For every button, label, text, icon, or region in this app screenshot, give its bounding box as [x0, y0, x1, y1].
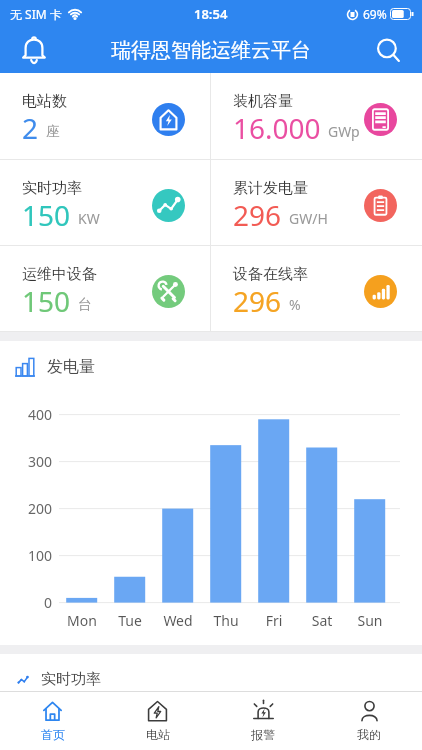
staticText: Mon: [58, 611, 106, 630]
staticText: 设备在线率: [233, 265, 308, 284]
staticText: 150: [22, 196, 71, 234]
staticText: 实时功率: [41, 670, 101, 689]
staticText: 16.000: [233, 109, 321, 147]
staticText: 296: [233, 196, 282, 234]
staticText: 200: [10, 499, 52, 518]
button[interactable]: 运维中设备: [0, 246, 210, 331]
staticText: 0: [10, 593, 52, 612]
button[interactable]: 报警: [210, 692, 316, 749]
staticText: 18:54: [194, 5, 228, 23]
staticText: 装机容量: [233, 92, 293, 111]
staticText: 运维中设备: [22, 265, 97, 284]
staticText: Sat: [298, 611, 346, 630]
staticText: Tue: [106, 611, 154, 630]
button[interactable]: 累计发电量: [211, 160, 422, 245]
button[interactable]: 电站数: [0, 73, 210, 159]
staticText: Fri: [250, 611, 298, 630]
staticText: KW: [78, 209, 100, 228]
button[interactable]: 装机容量: [211, 73, 422, 159]
staticText: 2: [22, 109, 39, 147]
staticText: 瑞得恩智能运维云平台: [111, 38, 311, 63]
staticText: 发电量: [47, 357, 95, 377]
staticText: Sun: [346, 611, 394, 630]
button[interactable]: 设备在线率: [211, 246, 422, 331]
staticText: GW/H: [289, 209, 328, 228]
staticText: 无 SIM 卡: [10, 6, 62, 22]
staticText: 座: [46, 123, 60, 141]
staticText: Thu: [202, 611, 250, 630]
staticText: 我的: [357, 727, 381, 742]
staticText: 150: [22, 282, 71, 320]
button[interactable]: 电站: [105, 692, 210, 749]
staticText: 400: [10, 405, 52, 424]
staticText: 实时功率: [22, 179, 82, 198]
button[interactable]: 首页: [0, 692, 105, 749]
button[interactable]: 实时功率: [0, 160, 210, 245]
button[interactable]: 我的: [316, 692, 422, 749]
staticText: Wed: [154, 611, 202, 630]
staticText: 300: [10, 452, 52, 471]
button[interactable]: [16, 33, 52, 69]
staticText: GWp: [328, 122, 360, 141]
staticText: 296: [233, 282, 282, 320]
staticText: 69%: [363, 6, 387, 22]
staticText: 电站: [146, 727, 170, 742]
staticText: 首页: [41, 727, 65, 742]
button[interactable]: [372, 34, 406, 68]
staticText: 台: [78, 296, 92, 314]
staticText: 累计发电量: [233, 179, 308, 198]
staticText: 电站数: [22, 92, 67, 111]
staticText: %: [289, 295, 301, 314]
staticText: 100: [10, 546, 52, 565]
staticText: 报警: [251, 727, 275, 742]
